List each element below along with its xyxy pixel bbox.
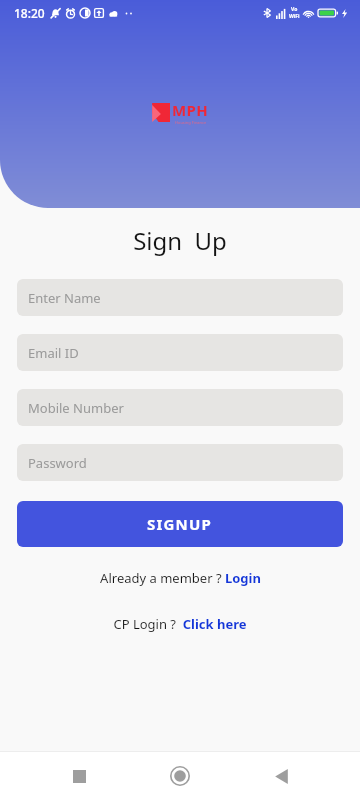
staticText: Already a member ? Login xyxy=(100,569,261,587)
button[interactable]: CP Login ? Click here xyxy=(0,615,360,633)
staticText: Vo xyxy=(291,6,298,13)
button[interactable]: Enter Name xyxy=(17,279,343,316)
staticText: 18:20 xyxy=(14,5,45,21)
staticText: Sign Up xyxy=(0,224,360,257)
button[interactable]: Email ID xyxy=(17,334,343,371)
button[interactable]: Recent apps xyxy=(57,754,101,798)
button[interactable]: SIGNUP xyxy=(17,501,343,547)
staticText: Mobile Number xyxy=(28,399,124,417)
staticText: MPH xyxy=(172,100,209,120)
staticText: Password xyxy=(28,454,87,472)
staticText: WiFi xyxy=(289,13,300,20)
staticText: Enter Name xyxy=(28,289,101,307)
staticText: Housing Finance xyxy=(175,120,207,125)
button[interactable]: Mobile Number xyxy=(17,389,343,426)
staticText: CP Login ? Click here xyxy=(113,615,247,633)
button[interactable]: Already a member ? Login xyxy=(0,569,360,587)
staticText: Email ID xyxy=(28,344,79,362)
staticText: SIGNUP xyxy=(147,514,213,534)
button[interactable]: Back xyxy=(259,754,303,798)
button[interactable]: Password xyxy=(17,444,343,481)
button[interactable]: Home xyxy=(158,754,202,798)
